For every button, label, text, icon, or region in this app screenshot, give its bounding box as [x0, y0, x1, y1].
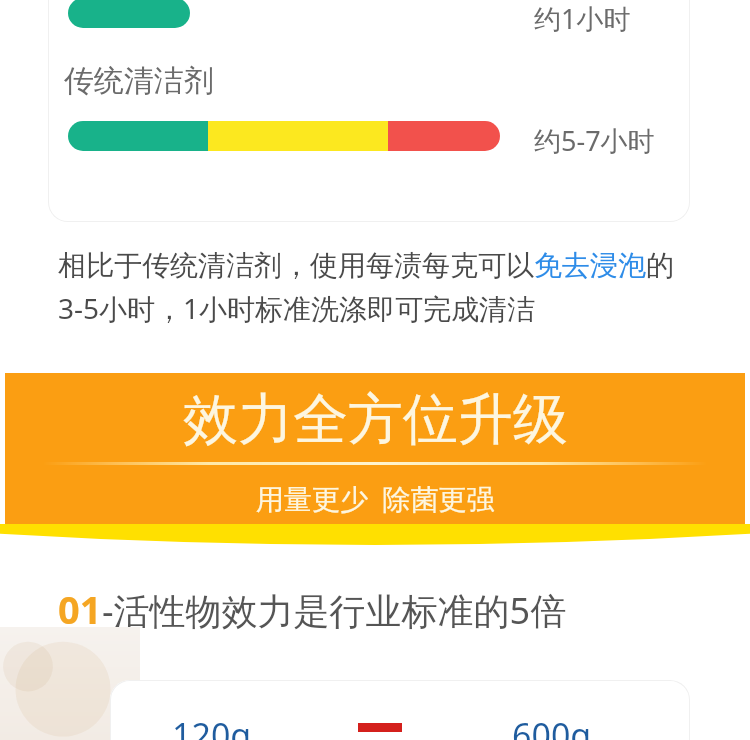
staticText: 01: [58, 583, 102, 635]
button[interactable]: [48, 0, 690, 222]
staticText: 120g: [172, 712, 252, 740]
staticText: 传统清洁剂: [64, 62, 214, 100]
staticText: 600g: [512, 712, 592, 740]
staticText: 用量更少 除菌更强: [256, 479, 495, 517]
staticText: 约1小时: [534, 0, 631, 37]
staticText: -活性物效力是行业标准的5倍: [102, 586, 567, 635]
staticText: 3-5小时，1小时标准洗涤即可完成清洁: [58, 289, 536, 327]
staticText: 相比于传统清洁剂，使用每渍每克可以免去浸泡的: [58, 248, 674, 283]
staticText: 效力全方位升级: [183, 385, 568, 454]
staticText: 约5-7小时: [534, 122, 655, 159]
button[interactable]: [110, 680, 690, 740]
